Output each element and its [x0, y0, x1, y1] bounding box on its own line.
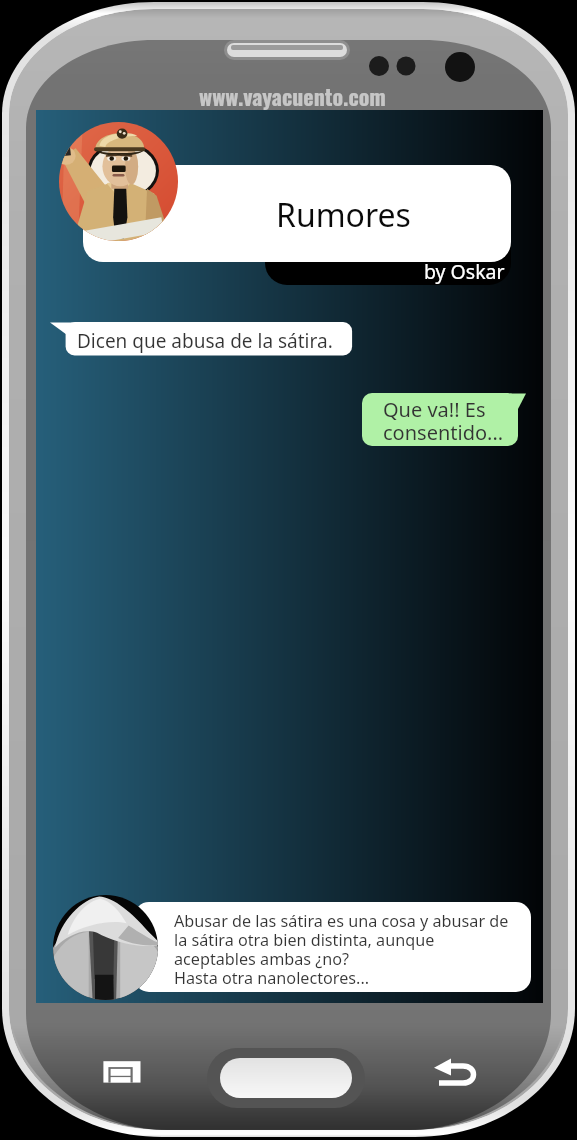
button[interactable]: Back [425, 1050, 485, 1094]
staticText: Que va!! Es consentido... [383, 396, 504, 446]
button[interactable]: Abusar de las sátira es una cosa y abusa… [134, 902, 531, 992]
button[interactable]: Menu [93, 1050, 151, 1094]
button[interactable]: Author avatar [59, 122, 178, 241]
staticText: Abusar de las sátira es una cosa y abusa… [174, 910, 509, 988]
button[interactable]: Home [207, 1048, 365, 1108]
staticText: Dicen que abusa de la sátira. [77, 328, 333, 354]
staticText: Rumores [276, 193, 411, 237]
button[interactable]: Rumores [83, 165, 511, 262]
staticText: www.vayacuento.com [199, 80, 386, 113]
staticText: by Oskar [424, 258, 505, 285]
button[interactable]: by Oskar [265, 230, 511, 285]
button[interactable]: Reader avatar [53, 895, 158, 1000]
